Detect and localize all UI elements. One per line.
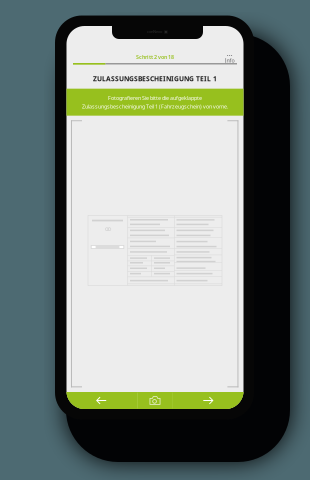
button[interactable]: Take photo <box>138 392 172 409</box>
staticText: conNexo ▣ <box>147 29 168 34</box>
staticText: Zulassungsbescheinigung Teil 1 (Fahrzeug… <box>82 103 228 110</box>
staticText: Info <box>224 57 234 64</box>
staticText: ••• <box>226 52 232 59</box>
button[interactable]: Info <box>221 52 237 64</box>
staticText: Schritt 2 von 18 <box>136 53 174 61</box>
button[interactable]: Back <box>66 392 137 409</box>
button[interactable]: Next <box>173 392 243 409</box>
staticText: Fotografieren Sie bitte die aufgeklappte <box>108 94 202 101</box>
staticText: ZULASSUNGSBESCHEINIGUNG TEIL 1 <box>93 74 217 83</box>
